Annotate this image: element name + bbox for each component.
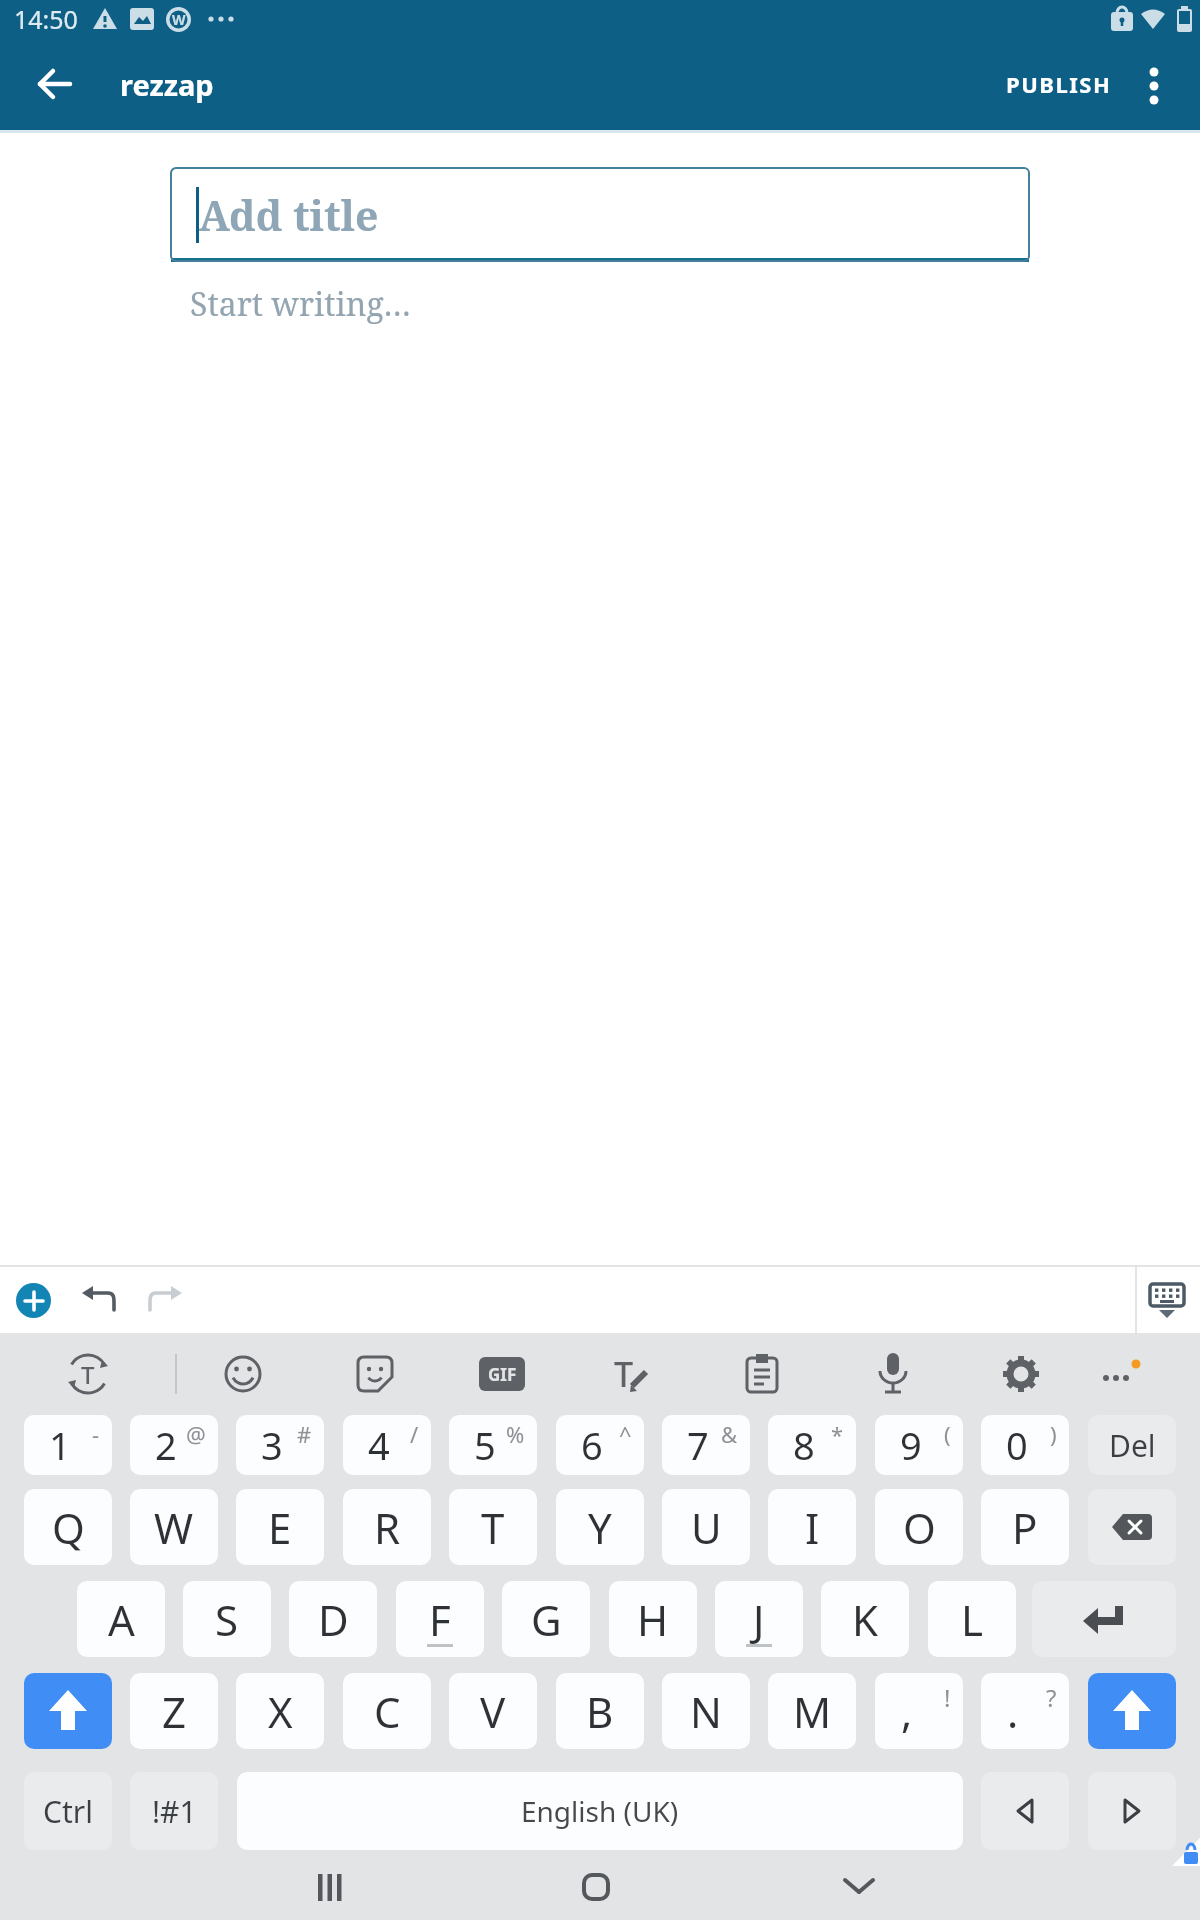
- button[interactable]: 9: [875, 1415, 963, 1475]
- button[interactable]: Ctrl: [24, 1772, 112, 1850]
- staticText: Q: [52, 1499, 85, 1556]
- button[interactable]: [981, 1772, 1069, 1850]
- staticText: I: [805, 1499, 820, 1556]
- button[interactable]: T: [606, 1350, 654, 1398]
- button[interactable]: 6: [556, 1415, 644, 1475]
- button[interactable]: T: [449, 1489, 537, 1565]
- button[interactable]: P: [981, 1489, 1069, 1565]
- button[interactable]: [997, 1350, 1045, 1398]
- button[interactable]: [30, 59, 80, 109]
- button[interactable]: X: [236, 1673, 324, 1749]
- button[interactable]: C: [343, 1673, 431, 1749]
- button[interactable]: Y: [556, 1489, 644, 1565]
- button[interactable]: [1135, 1267, 1199, 1333]
- button[interactable]: G: [502, 1581, 590, 1657]
- button[interactable]: 5: [449, 1415, 537, 1475]
- button[interactable]: 7: [662, 1415, 750, 1475]
- staticText: X: [268, 1683, 293, 1740]
- button[interactable]: 1: [24, 1415, 112, 1475]
- staticText: O: [903, 1499, 936, 1556]
- button[interactable]: [1096, 1350, 1144, 1398]
- staticText: PUBLISH: [1006, 69, 1112, 99]
- button[interactable]: [219, 1350, 267, 1398]
- button[interactable]: M: [768, 1673, 856, 1749]
- staticText: Y: [588, 1499, 612, 1556]
- staticText: 8: [793, 1419, 815, 1471]
- button[interactable]: [869, 1350, 917, 1398]
- staticText: F: [429, 1591, 451, 1648]
- button[interactable]: R: [343, 1489, 431, 1565]
- button[interactable]: [843, 1877, 879, 1899]
- button[interactable]: [145, 1280, 185, 1320]
- button[interactable]: I: [768, 1489, 856, 1565]
- staticText: GIF: [488, 1363, 517, 1386]
- button[interactable]: Z: [130, 1673, 218, 1749]
- staticText: rezzap: [120, 65, 214, 104]
- staticText: English (UK): [521, 1792, 679, 1830]
- staticText: U: [691, 1499, 722, 1556]
- button[interactable]: U: [662, 1489, 750, 1565]
- button[interactable]: 4: [343, 1415, 431, 1475]
- button[interactable]: [1088, 1673, 1176, 1749]
- button[interactable]: English (UK): [237, 1772, 963, 1850]
- button[interactable]: Add title: [170, 167, 1030, 262]
- button[interactable]: H: [609, 1581, 697, 1657]
- button[interactable]: 2: [130, 1415, 218, 1475]
- button[interactable]: [1136, 66, 1172, 102]
- button[interactable]: [1032, 1581, 1176, 1657]
- staticText: 3: [261, 1419, 283, 1471]
- button[interactable]: 0: [981, 1415, 1069, 1475]
- button[interactable]: .: [981, 1673, 1069, 1749]
- button[interactable]: [318, 1874, 358, 1904]
- staticText: 5: [474, 1419, 496, 1471]
- staticText: V: [480, 1683, 506, 1740]
- staticText: @: [186, 1419, 206, 1449]
- button[interactable]: O: [875, 1489, 963, 1565]
- staticText: M: [793, 1683, 832, 1740]
- button[interactable]: PUBLISH: [1006, 69, 1112, 99]
- staticText: H: [637, 1591, 669, 1648]
- staticText: 0: [1006, 1419, 1028, 1471]
- button[interactable]: [24, 1673, 112, 1749]
- button[interactable]: A: [77, 1581, 165, 1657]
- button[interactable]: L: [928, 1581, 1016, 1657]
- button[interactable]: D: [289, 1581, 377, 1657]
- staticText: L: [961, 1591, 984, 1648]
- button[interactable]: 3: [236, 1415, 324, 1475]
- button[interactable]: [1088, 1489, 1176, 1565]
- button[interactable]: V: [449, 1673, 537, 1749]
- staticText: &: [721, 1419, 738, 1449]
- staticText: Ctrl: [43, 1791, 93, 1832]
- button[interactable]: [582, 1873, 614, 1905]
- button[interactable]: [1088, 1772, 1176, 1850]
- button[interactable]: F: [396, 1581, 484, 1657]
- button[interactable]: J: [715, 1581, 803, 1657]
- button[interactable]: Start writing…: [190, 282, 412, 326]
- staticText: K: [852, 1591, 878, 1648]
- button[interactable]: !#1: [130, 1772, 218, 1850]
- staticText: ,: [901, 1683, 913, 1740]
- staticText: B: [586, 1683, 614, 1740]
- staticText: W: [172, 10, 186, 29]
- button[interactable]: [79, 1280, 119, 1320]
- button[interactable]: K: [821, 1581, 909, 1657]
- button[interactable]: 8: [768, 1415, 856, 1475]
- button[interactable]: S: [183, 1581, 271, 1657]
- button[interactable]: Del: [1088, 1415, 1176, 1475]
- button[interactable]: GIF: [478, 1350, 526, 1398]
- staticText: ): [1050, 1419, 1057, 1449]
- staticText: T: [481, 1499, 505, 1556]
- button[interactable]: [351, 1350, 399, 1398]
- button[interactable]: ,: [875, 1673, 963, 1749]
- staticText: %: [506, 1419, 525, 1449]
- button[interactable]: [16, 1283, 51, 1318]
- button[interactable]: W: [130, 1489, 218, 1565]
- button[interactable]: B: [556, 1673, 644, 1749]
- button[interactable]: Q: [24, 1489, 112, 1565]
- button[interactable]: T: [64, 1350, 112, 1398]
- button[interactable]: [738, 1350, 786, 1398]
- button[interactable]: N: [662, 1673, 750, 1749]
- staticText: 2: [155, 1419, 177, 1471]
- staticText: *: [831, 1419, 844, 1449]
- button[interactable]: E: [236, 1489, 324, 1565]
